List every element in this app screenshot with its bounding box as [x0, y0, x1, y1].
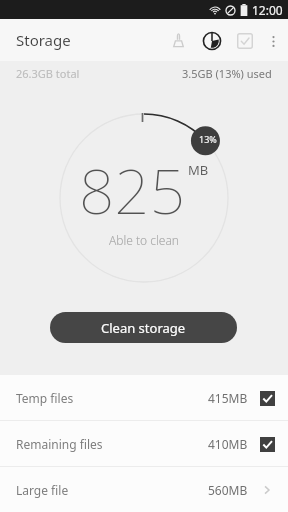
button[interactable]: More options	[261, 29, 285, 53]
staticText: 13%	[199, 133, 217, 145]
staticText: 560MB	[208, 482, 248, 498]
staticText: 12:00	[252, 2, 283, 18]
staticText: Temp files	[16, 390, 208, 406]
button[interactable]: Remaining files	[0, 421, 288, 466]
staticText: Able to clean	[109, 232, 179, 248]
staticText: 825	[79, 148, 186, 232]
button[interactable]: Clean	[162, 24, 195, 57]
staticText: Large file	[16, 482, 208, 498]
staticText: 410MB	[208, 436, 248, 452]
staticText: Clean storage	[101, 319, 186, 337]
staticText: Remaining files	[16, 436, 208, 452]
button[interactable]: Select items	[228, 24, 261, 57]
staticText: Storage	[16, 30, 71, 50]
staticText: 415MB	[208, 390, 248, 406]
button[interactable]: Large file	[0, 467, 288, 512]
button[interactable]: Temp files	[0, 375, 288, 420]
button[interactable]: Storage chart	[195, 24, 228, 57]
staticText: 26.3GB total	[16, 66, 80, 81]
staticText: 3.5GB (13%) used	[182, 66, 272, 81]
staticText: MB	[188, 161, 209, 179]
button[interactable]: Clean storage	[50, 312, 237, 343]
